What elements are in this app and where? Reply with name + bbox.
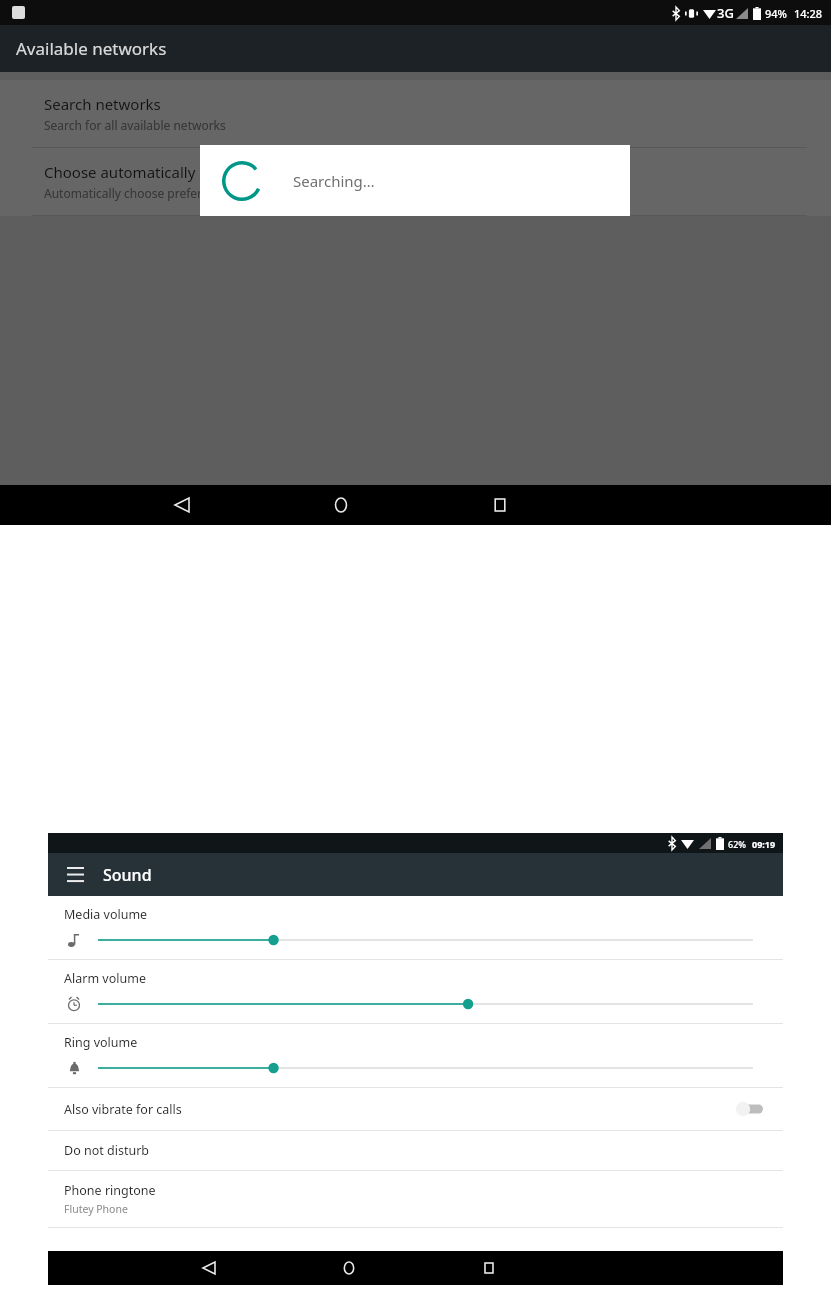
button[interactable]: Searching… [200,145,630,216]
button[interactable]: Do not disturb [48,1131,783,1170]
button[interactable]: Also vibrate for calls [48,1088,783,1130]
button[interactable]: Choose automatically [0,148,831,215]
button[interactable]: Home [332,1251,366,1285]
button[interactable]: Recent apps [472,1251,506,1285]
other: Also vibrate for calls toggle [727,1099,763,1119]
button[interactable]: Ring volume [48,1024,783,1087]
button[interactable]: Back [162,485,202,525]
button[interactable]: Open navigation menu [58,858,92,892]
staticText: 09:19 [752,838,776,850]
staticText: Ring volume [64,1034,138,1051]
button[interactable]: Alarm volume [48,960,783,1023]
staticText: Automatically choose preferred network [44,185,271,201]
button[interactable]: Search networks [0,80,831,147]
button[interactable]: Available networks [0,25,831,72]
staticText: 14:28 [794,6,823,21]
staticText: Also vibrate for calls [64,1101,182,1118]
button[interactable]: Recent apps [480,485,520,525]
staticText: Searching… [293,171,375,191]
button[interactable]: Back [192,1251,226,1285]
button[interactable]: Home [321,485,361,525]
staticText: Sound [103,864,152,886]
staticText: Choose automatically [44,162,196,182]
staticText: Search for all available networks [44,117,226,133]
staticText: Alarm volume [64,970,146,987]
staticText: 62% [728,838,746,850]
button[interactable]: Phone ringtone [48,1171,783,1227]
staticText: Available networks [16,37,167,60]
staticText: Flutey Phone [64,1202,128,1216]
button[interactable]: Media volume [48,896,783,959]
staticText: 94% [765,6,787,21]
staticText: Do not disturb [64,1142,149,1159]
staticText: Search networks [44,94,161,114]
staticText: Media volume [64,906,148,923]
staticText: Phone ringtone [64,1182,156,1199]
staticText: 3G [717,4,734,22]
